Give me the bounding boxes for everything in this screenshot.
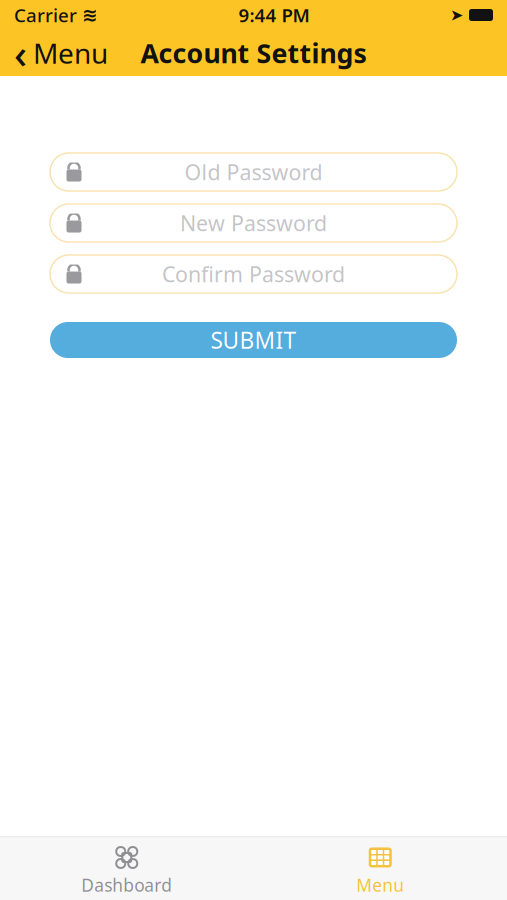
staticText: Menu bbox=[33, 34, 108, 72]
staticText: ‹ bbox=[14, 26, 27, 79]
staticText: Account Settings bbox=[140, 35, 366, 71]
staticText: Old Password bbox=[184, 158, 322, 186]
button[interactable]: Dashboard bbox=[0, 837, 253, 900]
staticText: New Password bbox=[180, 209, 327, 237]
staticText: ➤ bbox=[450, 6, 463, 24]
staticText: ≋ bbox=[82, 4, 98, 26]
button[interactable]: Menu bbox=[253, 837, 507, 900]
staticText: SUBMIT bbox=[210, 325, 296, 355]
staticText: Menu bbox=[356, 873, 404, 896]
button[interactable]: SUBMIT bbox=[50, 322, 457, 358]
staticText: Dashboard bbox=[81, 873, 172, 896]
staticText: 9:44 PM bbox=[238, 3, 309, 27]
button[interactable]: ‹ bbox=[0, 30, 122, 76]
staticText: Carrier bbox=[14, 3, 77, 27]
staticText: Confirm Password bbox=[162, 260, 345, 288]
